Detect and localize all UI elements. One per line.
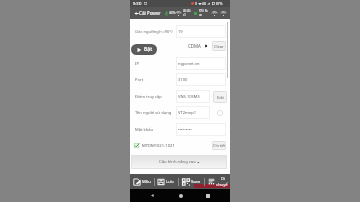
button[interactable]: 19 [176,25,226,38]
button[interactable]: Play [131,44,157,55]
staticText: Cài Power [139,10,161,16]
staticText: Chi tiết [213,143,226,148]
staticText: Di [221,176,226,182]
staticText: VT2mep1 [178,110,197,116]
staticText: VNS.10SMS [178,94,200,100]
staticText: 4G [202,2,207,6]
staticText: ••••••••• [178,127,192,133]
staticText: 4G 4G [183,9,191,13]
button[interactable]: Edit [213,91,227,103]
staticText: Góc ngưỡng(<=90°) [135,29,175,35]
button[interactable]: Back [132,9,140,17]
staticText: IP [135,61,175,67]
button[interactable]: Scan [182,174,204,189]
staticText: Clear [214,44,224,49]
staticText: 19 [178,29,183,35]
staticText: Scan [191,179,201,185]
button[interactable]: Chi tiết [212,141,226,150]
staticText: MTDM1021-1021 [142,143,175,149]
button[interactable]: Cấu hình nâng cao [131,155,227,169]
button[interactable]: Lưu [157,174,178,189]
staticText: chuyển [216,182,230,188]
staticText: 40% [169,11,176,15]
staticText: Mẫu [142,179,151,185]
button[interactable]: Clear [212,41,226,51]
button[interactable]: ngpcnet.vn [176,57,226,70]
button[interactable]: Mẫu [133,174,155,189]
staticText: 87% [216,2,223,6]
staticText: Cấu hình nâng cao [159,159,196,165]
button[interactable]: Back [147,190,158,201]
staticText: Bật [144,46,153,53]
button[interactable]: 3100 [176,73,226,86]
staticText: on [199,13,203,17]
staticText: RTU Rx [199,9,208,13]
button[interactable]: VNS.10SMS [176,90,210,103]
button[interactable]: Report [205,174,217,189]
button[interactable]: CDMA [188,41,208,51]
button[interactable]: MTDM1021-1021 [134,140,175,151]
button[interactable]: VT2mep1 [176,106,210,119]
staticText: Mật khẩu [135,127,175,133]
staticText: Lưu [166,179,174,185]
staticText: 5 [195,1,197,6]
staticText: CDMA [188,43,201,49]
button[interactable]: Recent apps [202,190,213,201]
button[interactable]: Clear [213,107,227,119]
button[interactable]: Di [216,174,230,189]
button[interactable]: Home [175,190,186,201]
staticText: Tên người sử dụng [135,110,175,116]
staticText: s1 [183,13,186,17]
button[interactable]: ••••••••• [176,123,226,136]
staticText: ngpcnet.vn [178,61,200,67]
staticText: Port [135,77,175,83]
staticText: 9:31 [133,1,141,6]
staticText: Điểm truy cập [135,94,175,100]
staticText: 3100 [178,77,188,83]
staticText: Edit [217,95,224,100]
